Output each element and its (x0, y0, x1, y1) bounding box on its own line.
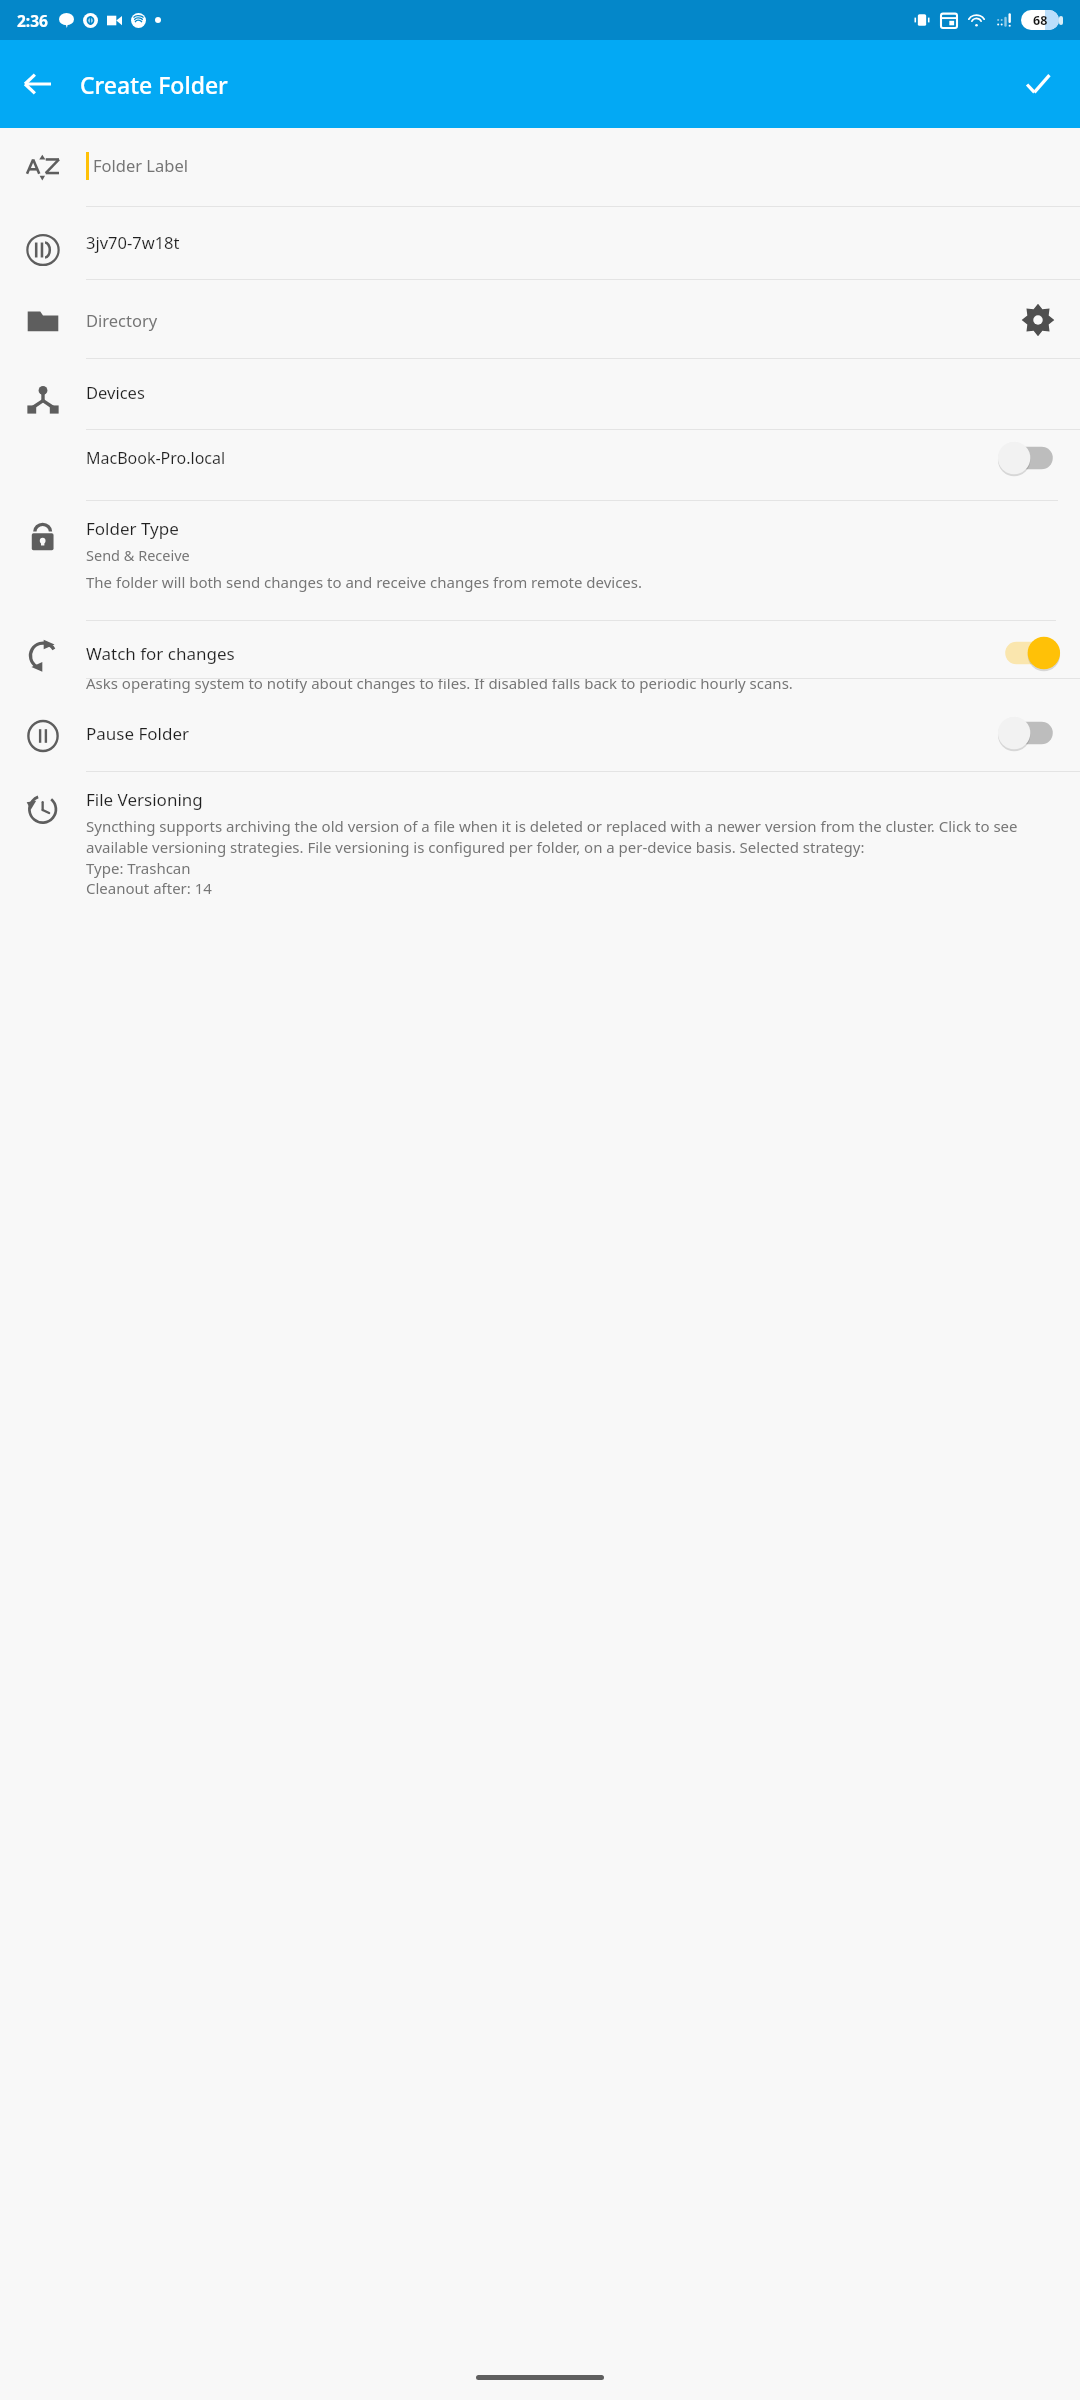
button[interactable]: MacBook-Pro.local (0, 430, 1080, 501)
button[interactable]: Save (1010, 56, 1066, 112)
button[interactable]: Enabled (1000, 635, 1058, 671)
staticText: Type: Trashcan (86, 858, 191, 878)
staticText: 2:36 (17, 10, 48, 31)
button[interactable]: Devices (0, 359, 1080, 430)
button[interactable]: Folder Type (0, 501, 1080, 621)
staticText: MacBook-Pro.local (86, 447, 1000, 469)
button[interactable]: Disabled (1000, 440, 1058, 476)
button[interactable]: Pause Folder (0, 697, 1080, 772)
staticText: 3jv70-7w18t (86, 231, 180, 253)
staticText: Devices (86, 381, 145, 403)
button[interactable]: Disabled (1000, 715, 1058, 751)
button[interactable]: Choose directory (1018, 300, 1058, 340)
staticText: Pause Folder (86, 722, 1000, 745)
button[interactable]: Directory (0, 280, 1080, 359)
button[interactable]: Folder Label (0, 128, 1080, 207)
staticText: Folder Label (93, 154, 188, 176)
staticText: Watch for changes (86, 642, 1000, 665)
staticText: Syncthing supports archiving the old ver… (86, 816, 1068, 858)
button[interactable]: 3jv70-7w18t (0, 207, 1080, 280)
staticText: The folder will both send changes to and… (86, 572, 643, 592)
button[interactable]: Back (10, 56, 66, 112)
staticText: Cleanout after: 14 (86, 878, 212, 898)
staticText: File Versioning (86, 788, 203, 811)
staticText: Folder Type (86, 517, 179, 540)
staticText: Send & Receive (86, 545, 190, 565)
staticText: Asks operating system to notify about ch… (86, 673, 793, 693)
staticText: Create Folder (80, 69, 228, 100)
button[interactable]: Watch for changes (0, 621, 1080, 697)
staticText: 68 (1033, 12, 1048, 29)
button[interactable]: File Versioning (0, 772, 1080, 898)
staticText: Directory (86, 309, 1018, 331)
